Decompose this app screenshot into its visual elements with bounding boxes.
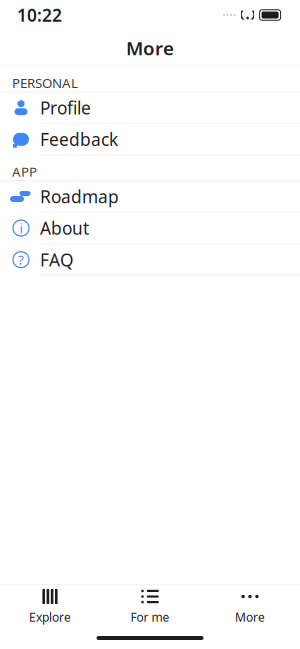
button[interactable]: Explore	[0, 581, 100, 631]
staticText: ?	[18, 251, 24, 268]
button[interactable]: Feedback	[0, 124, 300, 155]
button[interactable]: ?	[0, 244, 300, 275]
staticText: About	[40, 217, 89, 240]
button[interactable]: Roadmap	[0, 181, 300, 212]
staticText: APP	[12, 163, 37, 180]
staticText: i	[19, 219, 22, 237]
staticText: Roadmap	[40, 185, 119, 208]
staticText: PERSONAL	[12, 74, 78, 92]
button[interactable]: For me	[100, 581, 200, 631]
button[interactable]: i	[0, 213, 300, 244]
button[interactable]: More	[200, 581, 300, 631]
staticText: For me	[130, 609, 169, 625]
staticText: Explore	[29, 609, 71, 625]
staticText: More	[126, 36, 174, 60]
staticText: Feedback	[40, 128, 118, 151]
staticText: More	[235, 609, 265, 625]
staticText: 10:22	[17, 3, 62, 26]
staticText: Profile	[40, 96, 91, 119]
staticText: FAQ	[40, 248, 74, 271]
button[interactable]: Profile	[0, 92, 300, 123]
